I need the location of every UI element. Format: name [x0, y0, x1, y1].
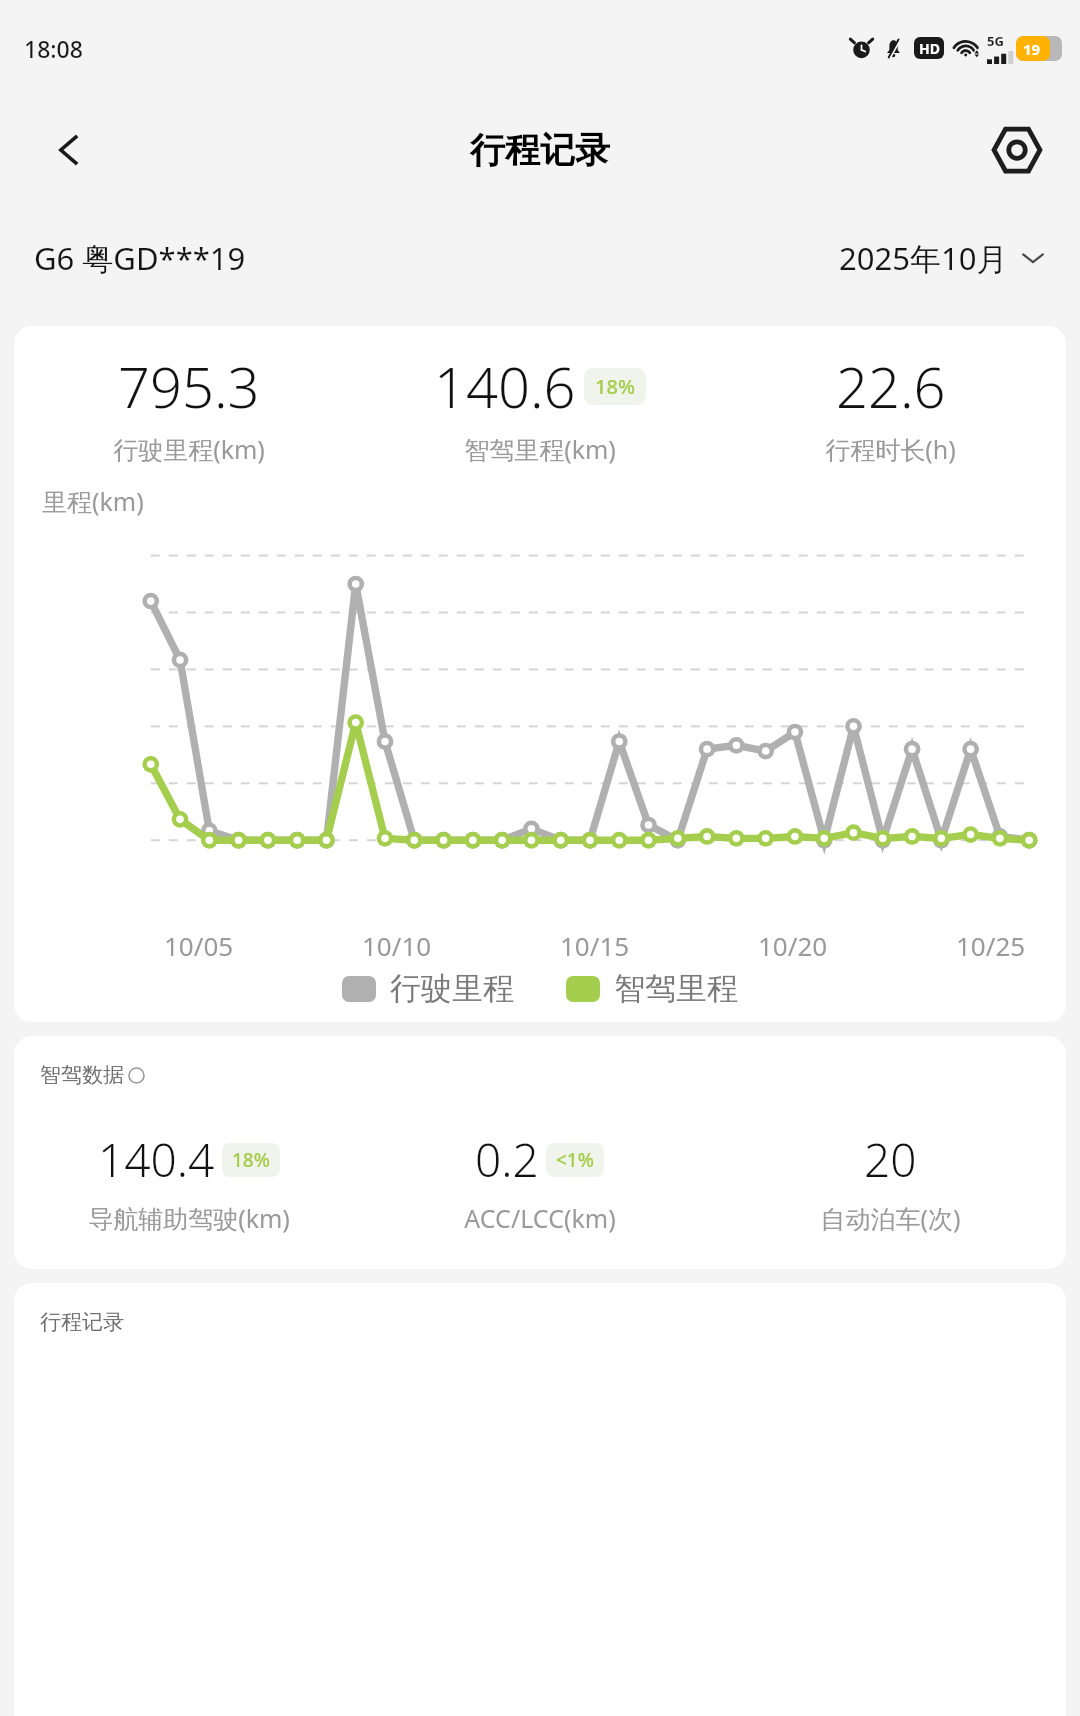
- staticText: 140.6: [434, 348, 576, 424]
- staticText: 140.4: [98, 1128, 215, 1191]
- other: 帮助: [128, 1067, 145, 1084]
- staticText: 智驾数据: [40, 1062, 124, 1088]
- staticText: 10/10: [362, 928, 432, 963]
- staticText: HD: [919, 39, 940, 58]
- staticText: 里程(km): [42, 484, 144, 518]
- staticText: 10/15: [560, 928, 630, 963]
- staticText: 行驶里程(km): [113, 432, 265, 466]
- staticText: 0.2: [475, 1128, 539, 1191]
- staticText: 18%: [595, 373, 635, 400]
- button[interactable]: G6 粤GD***19: [34, 237, 246, 279]
- staticText: 行程记录: [40, 1309, 124, 1335]
- button[interactable]: 795.3: [14, 348, 364, 466]
- staticText: 19: [1023, 39, 1041, 59]
- button[interactable]: 智驾里程: [566, 969, 738, 1008]
- staticText: 自动泊车(次): [820, 1201, 961, 1235]
- button[interactable]: 智驾数据: [40, 1062, 145, 1088]
- staticText: 行程记录: [470, 128, 610, 172]
- staticText: 22.6: [836, 348, 946, 424]
- button[interactable]: 0.2: [364, 1128, 715, 1235]
- staticText: 智驾里程: [614, 969, 738, 1008]
- staticText: 10/05: [164, 928, 234, 963]
- button[interactable]: 140.4: [14, 1128, 364, 1235]
- staticText: 2025年10月: [839, 237, 1008, 279]
- staticText: 795.3: [118, 348, 260, 424]
- staticText: 智驾里程(km): [464, 432, 616, 466]
- button[interactable]: 2025年10月: [839, 237, 1046, 279]
- staticText: 导航辅助驾驶(km): [88, 1201, 290, 1235]
- staticText: 10/25: [956, 928, 1026, 963]
- button[interactable]: 设置: [988, 121, 1046, 179]
- staticText: ACC/LCC(km): [464, 1201, 616, 1235]
- staticText: 20: [864, 1128, 917, 1191]
- staticText: 行驶里程: [390, 969, 514, 1008]
- staticText: 10/20: [758, 928, 828, 963]
- staticText: 行程时长(h): [825, 432, 956, 466]
- button[interactable]: 22.6: [715, 348, 1066, 466]
- button[interactable]: 返回: [42, 123, 96, 177]
- staticText: <1%: [556, 1147, 594, 1173]
- button[interactable]: 140.6: [364, 348, 715, 466]
- staticText: 5G: [987, 32, 1004, 50]
- staticText: 18:08: [24, 33, 83, 64]
- staticText: 18%: [232, 1147, 270, 1173]
- button[interactable]: 行驶里程: [342, 969, 514, 1008]
- button[interactable]: 20: [715, 1128, 1066, 1235]
